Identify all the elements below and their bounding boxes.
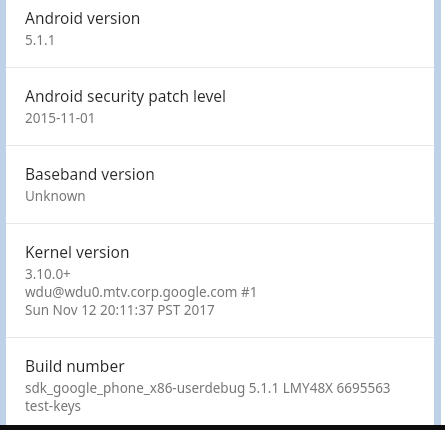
button[interactable]: Android version [6, 0, 434, 67]
staticText: Android security patch level [25, 85, 227, 106]
staticText: Kernel version [25, 241, 130, 262]
staticText: Baseband version [25, 163, 155, 184]
staticText: Android version [25, 7, 141, 28]
staticText: 3.10.0+ [25, 265, 71, 283]
staticText: Unknown [25, 187, 86, 205]
button[interactable]: Kernel version [6, 224, 434, 337]
staticText: 2015-11-01 [25, 109, 96, 127]
staticText: wdu@wdu0.mtv.corp.google.com #1 [25, 283, 258, 301]
button[interactable]: Build number [6, 338, 434, 425]
staticText: Sun Nov 12 20:11:37 PST 2017 [25, 301, 215, 319]
staticText: 5.1.1 [25, 31, 56, 49]
staticText: test-keys [25, 397, 82, 415]
button[interactable]: Baseband version [6, 146, 434, 223]
button[interactable]: Android security patch level [6, 68, 434, 145]
staticText: sdk_google_phone_x86-userdebug 5.1.1 LMY… [25, 379, 391, 397]
staticText: Build number [25, 355, 125, 376]
